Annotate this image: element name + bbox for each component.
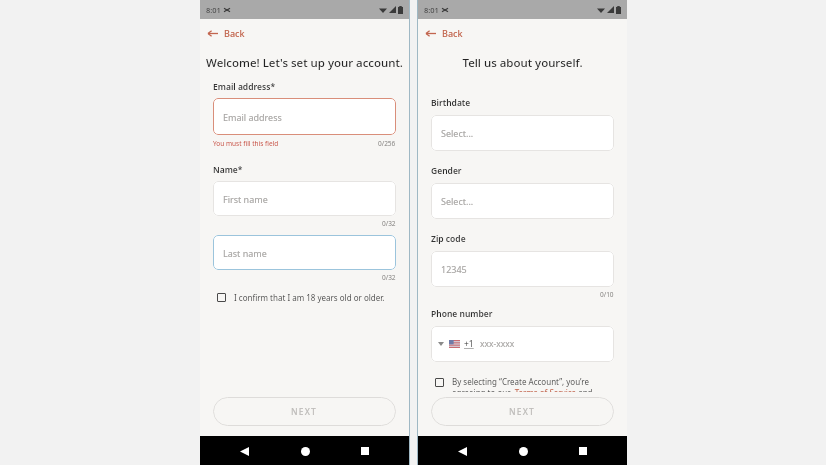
staticText: Zip code [431,233,466,245]
staticText: First name [223,193,268,205]
staticText: Name* [213,164,243,176]
staticText: 0/256 [378,139,396,148]
staticText: Phone number [431,308,493,320]
button[interactable]: Back [200,19,409,47]
staticText: You must fill this field [213,139,279,148]
staticText: NEXT [509,406,536,418]
staticText: Email address [223,111,282,123]
button[interactable]: Recents [573,441,593,461]
button[interactable]: Select... [431,183,614,219]
button[interactable]: Last name [213,235,396,270]
button[interactable]: Email address [213,98,396,135]
staticText: Back [224,27,245,39]
button[interactable]: Back [234,441,254,461]
staticText: I confirm that I am 18 years old or olde… [234,292,385,303]
staticText: Birthdate [431,97,471,109]
staticText: 0/32 [382,273,396,282]
button[interactable]: Home [295,441,315,461]
button[interactable]: Back [452,441,472,461]
staticText: Gender [431,165,462,177]
staticText: Welcome! Let's set up your account. [206,55,403,71]
staticText: Select... [441,195,474,207]
button[interactable]: NEXT [431,397,614,426]
button[interactable]: By selecting “Create Account”, you’re ag… [431,376,614,392]
button[interactable]: NEXT [213,397,396,426]
staticText: Tell us about yourself. [462,55,583,71]
staticText: 12345 [441,263,467,275]
button[interactable]: Select... [431,115,614,151]
button[interactable]: +1 [431,326,614,362]
button[interactable]: I confirm that I am 18 years old or olde… [213,292,396,303]
staticText: +1 [464,338,474,350]
button[interactable]: First name [213,181,396,216]
staticText: By selecting “Create Account”, you’re ag… [452,376,614,392]
staticText: 8:01 [424,5,439,15]
button[interactable]: Back [418,19,627,47]
button[interactable]: 12345 [431,251,614,287]
staticText: 8:01 [206,5,221,15]
staticText: Back [442,27,463,39]
staticText: Email address* [213,81,276,93]
staticText: 0/10 [600,290,614,299]
button[interactable]: Recents [355,441,375,461]
staticText: Last name [223,247,267,259]
staticText: NEXT [291,406,318,418]
staticText: 0/32 [382,219,396,228]
button[interactable]: Home [513,441,533,461]
staticText: xxx-xxxx [480,338,515,350]
staticText: Select... [441,127,474,139]
